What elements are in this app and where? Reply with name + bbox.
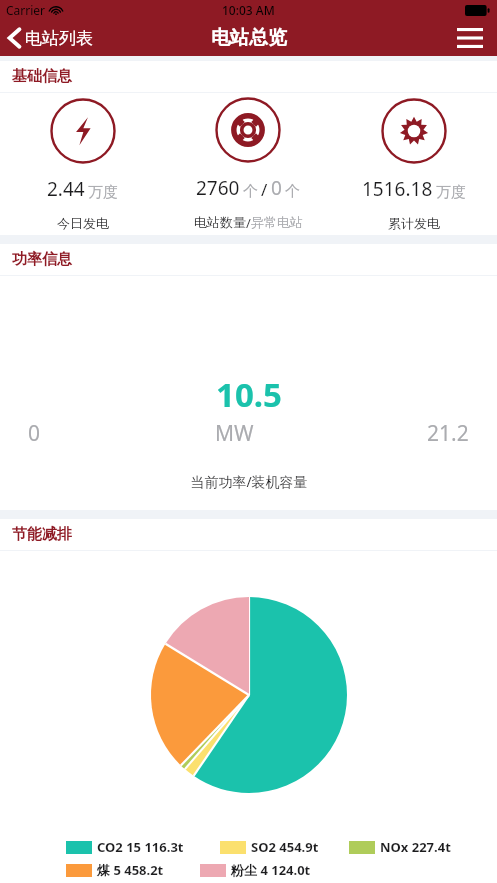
staticText: 功率信息 xyxy=(12,250,72,269)
staticText: 21.2 xyxy=(427,419,469,448)
staticText: 0 xyxy=(271,175,282,201)
staticText: 当前功率/装机容量 xyxy=(190,472,308,491)
staticText: MW xyxy=(215,419,254,448)
staticText: 基础信息 xyxy=(12,67,72,86)
staticText: 万度 xyxy=(88,183,118,202)
staticText: 节能减排 xyxy=(12,525,72,544)
button[interactable]: 1516.18 xyxy=(331,93,497,235)
staticText: Carrier xyxy=(6,2,46,18)
button[interactable]: NOx 227.4t xyxy=(349,838,451,856)
button[interactable]: CO2 15 116.3t xyxy=(66,838,184,856)
staticText: 2760 xyxy=(196,175,240,201)
staticText: 电站列表 xyxy=(25,28,93,49)
staticText: 个 xyxy=(285,182,300,201)
staticText: 电站数量 xyxy=(194,214,246,230)
staticText: 个 xyxy=(243,182,258,201)
staticText: / xyxy=(261,178,268,201)
button[interactable]: 2760 xyxy=(165,93,331,235)
staticText: CO2 15 116.3t xyxy=(97,838,184,856)
staticText: 电站总览 xyxy=(211,26,287,50)
button[interactable]: 2.44 xyxy=(0,93,165,235)
staticText: 10.5 xyxy=(216,372,282,417)
staticText: 1516.18 xyxy=(362,176,433,202)
button[interactable]: 电站列表 xyxy=(0,25,101,51)
button[interactable]: SO2 454.9t xyxy=(220,838,319,856)
staticText: 异常电站 xyxy=(251,214,303,230)
staticText: / xyxy=(246,214,251,232)
button[interactable]: Menu xyxy=(443,22,497,54)
staticText: 粉尘 4 124.0t xyxy=(231,861,311,879)
staticText: NOx 227.4t xyxy=(380,838,451,856)
staticText: 累计发电 xyxy=(388,215,440,231)
staticText: 煤 5 458.2t xyxy=(97,861,164,879)
staticText: 10:03 AM xyxy=(222,2,275,18)
staticText: 今日发电 xyxy=(57,215,109,231)
button[interactable]: 粉尘 4 124.0t xyxy=(200,861,311,879)
staticText: SO2 454.9t xyxy=(251,838,319,856)
button[interactable]: 煤 5 458.2t xyxy=(66,861,164,879)
staticText: 万度 xyxy=(436,183,466,202)
staticText: 0 xyxy=(28,419,41,448)
staticText: 2.44 xyxy=(47,176,85,202)
